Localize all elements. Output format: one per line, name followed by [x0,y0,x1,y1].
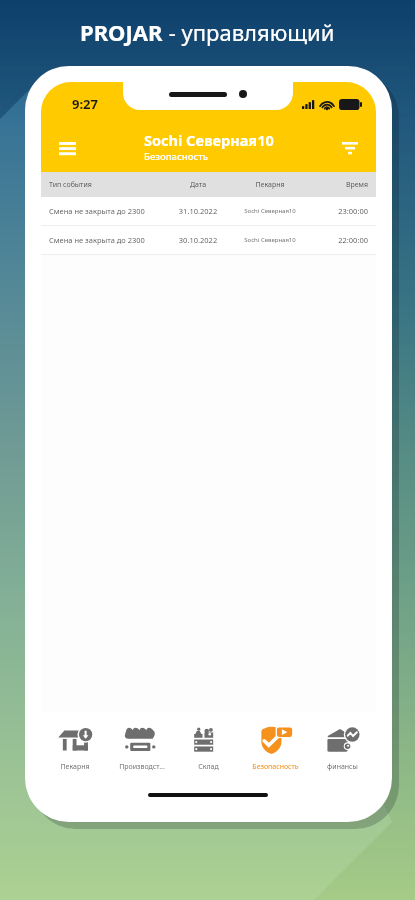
staticText: Sochi Северная10 [232,207,308,215]
staticText: Дата [164,180,232,190]
staticText: Безопасность [144,150,209,163]
staticText: Смена не закрыта до 2300 [49,206,164,216]
staticText: 31.10.2022 [164,206,232,216]
staticText: 30.10.2022 [164,235,232,245]
button[interactable]: Безопасность [242,712,309,776]
staticText: Пекарня [232,180,308,190]
button[interactable]: Производст... [108,712,175,776]
staticText: PROJAR [80,17,163,47]
staticText: Смена не закрыта до 2300 [49,235,164,245]
staticText: 23:00:00 [308,206,368,216]
staticText: финансы [327,762,358,772]
staticText: Производст... [119,762,165,772]
button[interactable]: Смена не закрыта до 2300 [41,197,376,226]
button[interactable]: Menu [47,128,87,168]
button[interactable]: Склад [175,712,242,776]
staticText: Sochi Северная10 [144,130,274,150]
staticText: Sochi Северная10 [232,236,308,244]
button[interactable]: Смена не закрыта до 2300 [41,226,376,255]
staticText: Безопасность [252,762,299,772]
staticText: Тип события [49,180,164,190]
staticText: - управляющий [163,17,335,47]
staticText: 22:00:00 [308,235,368,245]
button[interactable]: Пекарня [41,712,108,776]
staticText: 9:27 [72,95,98,113]
button[interactable]: Filter [330,128,370,168]
button[interactable]: финансы [309,712,376,776]
staticText: Пекарня [60,762,90,772]
staticText: Склад [198,762,219,772]
staticText: Время [308,180,368,190]
